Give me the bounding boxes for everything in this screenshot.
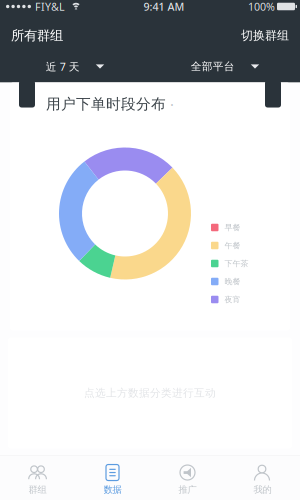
staticText: 100% [248, 0, 275, 14]
staticText: 用户下单时段分布 [46, 95, 166, 113]
staticText: FIY&L [35, 0, 65, 14]
button[interactable]: 切换群组 [241, 28, 289, 43]
staticText: 午餐 [224, 241, 240, 250]
button[interactable]: 推广 [150, 456, 225, 500]
staticText: 夜宵 [224, 295, 240, 304]
staticText: 晚餐 [224, 277, 240, 286]
button[interactable]: 全部平台 [150, 51, 300, 82]
button[interactable]: 群组 [0, 456, 75, 500]
staticText: 切换群组 [241, 28, 289, 43]
button[interactable]: 近 7 天 [0, 51, 150, 82]
staticText: 点选上方数据分类进行互动 [84, 386, 216, 399]
staticText: · [170, 94, 174, 114]
staticText: 9:41 AM [143, 0, 184, 14]
staticText: 推广 [178, 484, 196, 495]
staticText: 数据 [103, 484, 121, 495]
staticText: 下午茶 [224, 259, 248, 268]
staticText: 所有群组 [11, 27, 63, 44]
button[interactable]: 数据 [75, 456, 150, 500]
staticText: 我的 [253, 484, 271, 495]
button[interactable]: 我的 [225, 456, 300, 500]
staticText: 近 7 天 [46, 59, 80, 74]
staticText: 全部平台 [191, 60, 235, 73]
staticText: 早餐 [224, 223, 240, 232]
staticText: 群组 [28, 484, 46, 495]
